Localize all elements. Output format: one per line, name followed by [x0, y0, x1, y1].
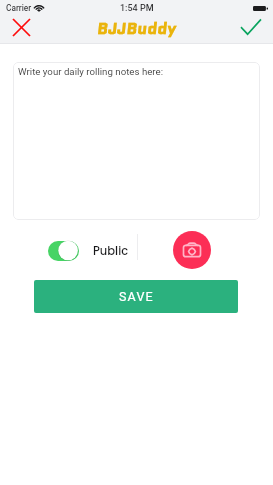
button[interactable]: Write your daily rolling notes here: — [13, 62, 260, 220]
staticText: Public — [93, 243, 129, 259]
button[interactable]: SAVE — [34, 280, 238, 313]
staticText: Carrier — [6, 3, 32, 13]
button[interactable]: Public — [48, 240, 129, 261]
staticText: 1:54 PM — [120, 3, 154, 14]
staticText: BJJBuddy — [97, 17, 177, 40]
staticText: SAVE — [119, 289, 154, 304]
button[interactable]: Take photo — [173, 231, 211, 269]
staticText: Write your daily rolling notes here: — [18, 66, 164, 77]
button[interactable]: Save — [230, 16, 273, 43]
button[interactable]: Cancel — [0, 16, 42, 43]
